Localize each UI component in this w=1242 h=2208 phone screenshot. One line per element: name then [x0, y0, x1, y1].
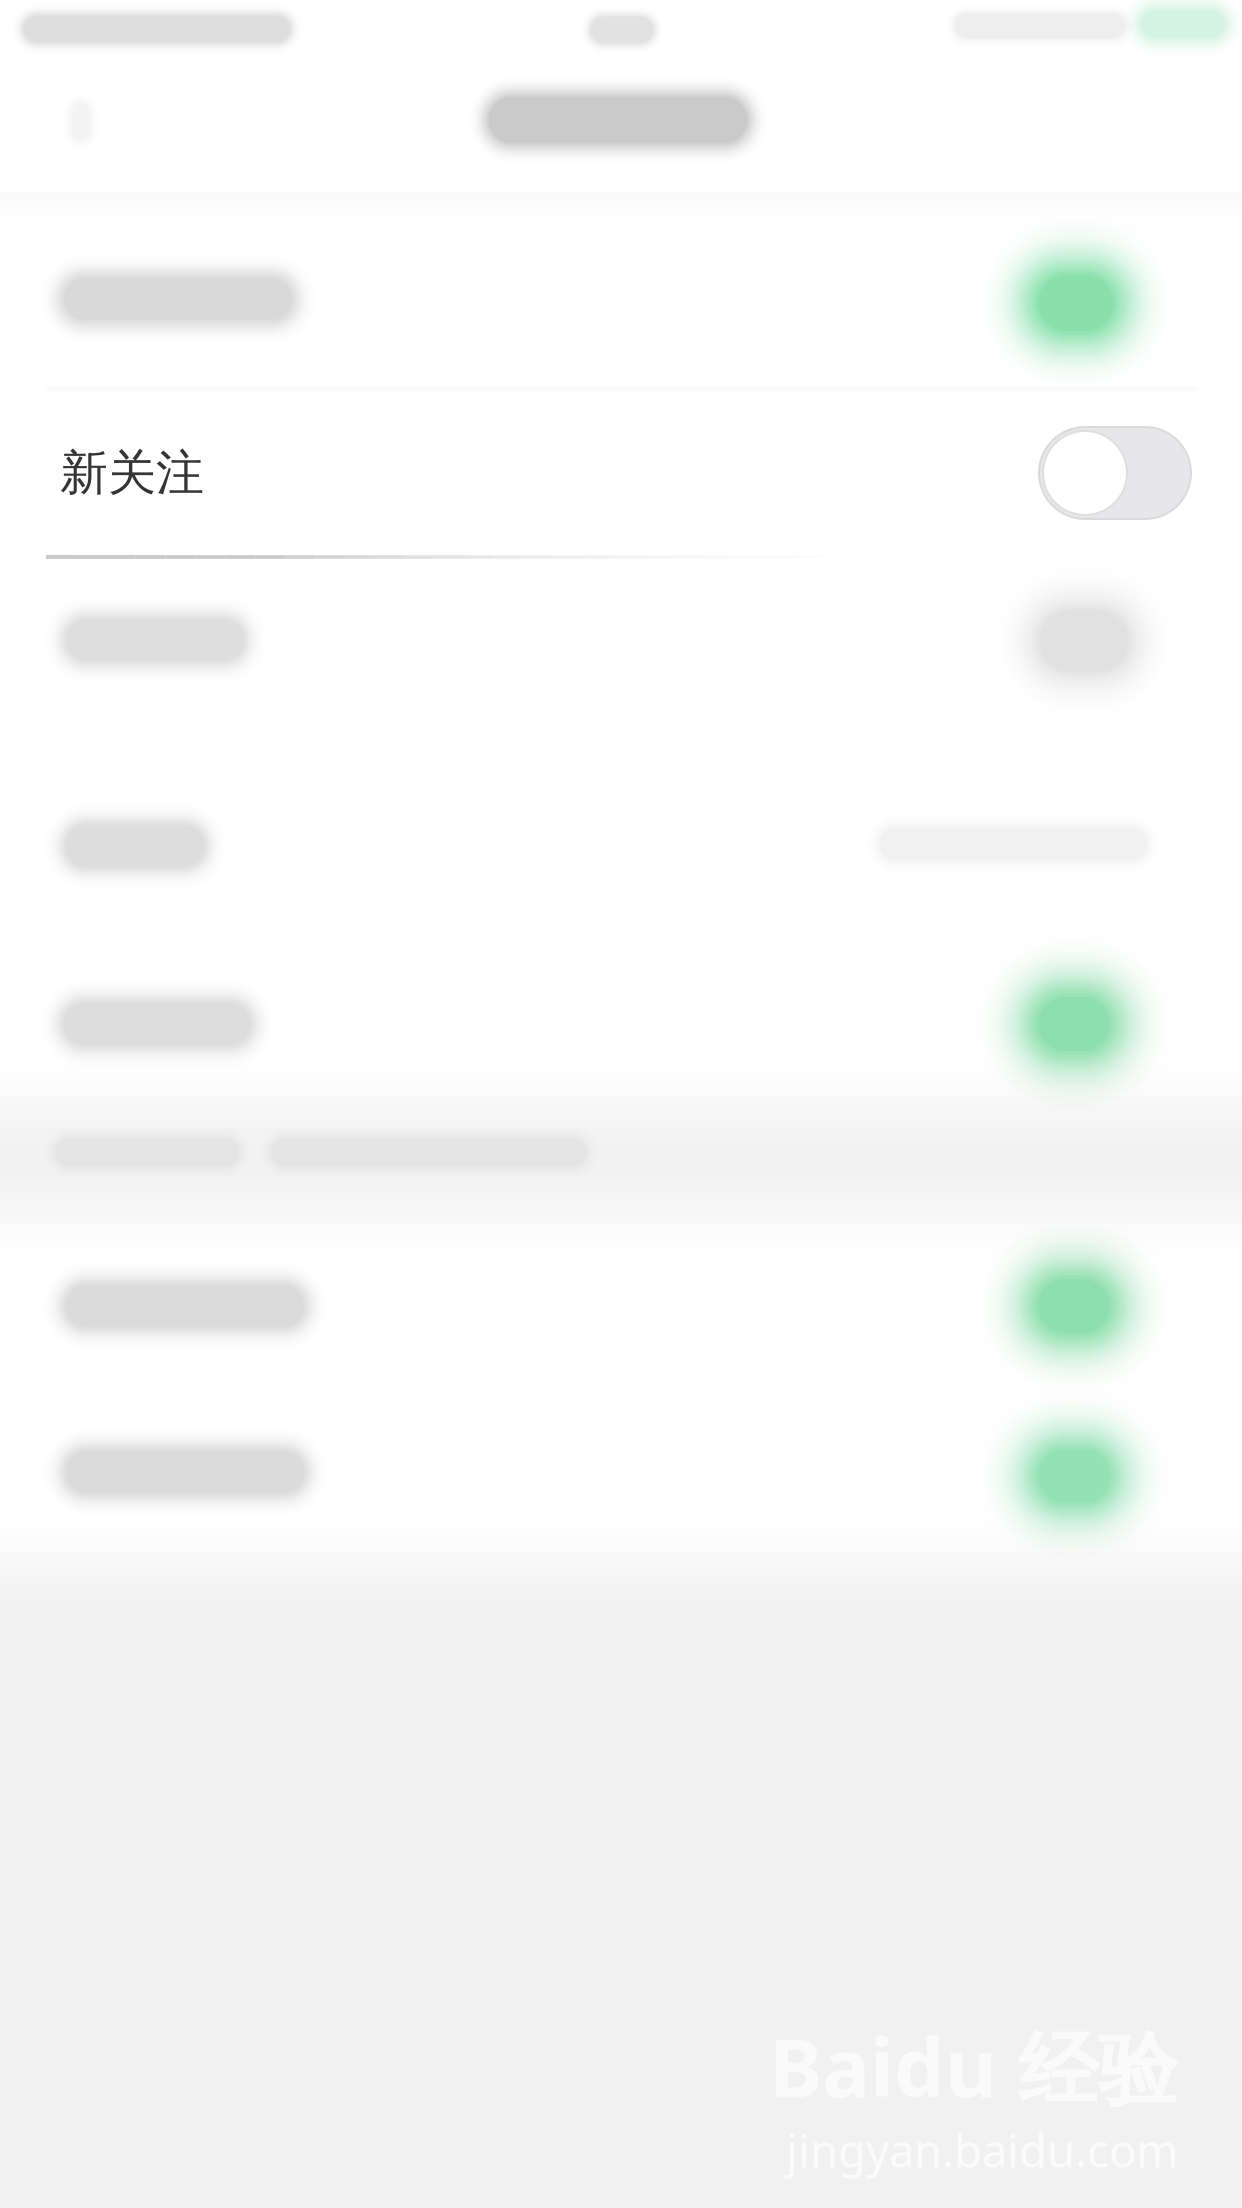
button[interactable]: [0, 1215, 1242, 1391]
staticText: 新关注: [60, 443, 204, 502]
button[interactable]: [0, 186, 1242, 389]
staticText: Baidu 经验: [769, 2013, 1178, 2120]
button[interactable]: [0, 1391, 1242, 1563]
staticText: jingyan.baidu.com: [786, 2120, 1178, 2180]
button[interactable]: [0, 900, 1242, 1105]
button[interactable]: [0, 725, 1242, 900]
button[interactable]: [0, 557, 1242, 725]
button[interactable]: [0, 389, 1242, 557]
